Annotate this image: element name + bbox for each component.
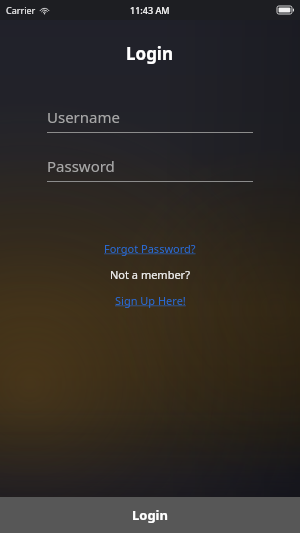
button[interactable]: Sign Up Here!: [0, 290, 300, 311]
staticText: Sign Up Here!: [115, 293, 186, 308]
staticText: Username: [47, 107, 120, 127]
staticText: Forgot Password?: [104, 241, 196, 256]
staticText: Login: [126, 42, 174, 65]
staticText: Password: [47, 156, 115, 176]
other: Wi-Fi signal: [40, 6, 49, 15]
other: Battery full: [277, 6, 294, 14]
staticText: Carrier: [6, 4, 36, 16]
button[interactable]: Username: [47, 107, 253, 133]
staticText: 11:43 AM: [130, 4, 170, 16]
staticText: Login: [132, 506, 168, 524]
button[interactable]: Login: [0, 497, 300, 533]
button[interactable]: Forgot Password?: [0, 238, 300, 259]
button[interactable]: Password: [47, 156, 253, 182]
staticText: Not a member?: [110, 267, 190, 282]
